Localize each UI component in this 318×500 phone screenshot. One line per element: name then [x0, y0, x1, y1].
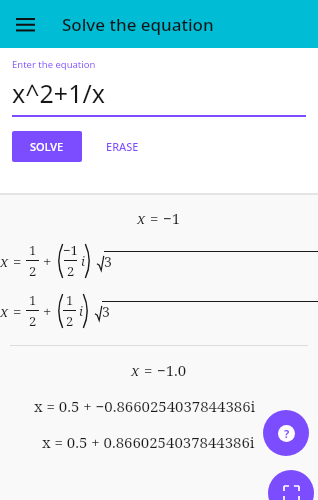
staticText: −1 [63, 241, 78, 259]
staticText: 2 [29, 262, 37, 280]
button[interactable]: Fullscreen [268, 470, 314, 500]
staticText: −1.0 [157, 360, 187, 380]
staticText: i [81, 252, 85, 270]
staticText: 3 [104, 252, 112, 271]
staticText: 2 [66, 312, 74, 330]
button[interactable]: ERASE [98, 132, 147, 161]
staticText: x [0, 301, 9, 321]
staticText: 3 [102, 302, 110, 321]
staticText: = [140, 360, 157, 380]
staticText: 1 [29, 241, 37, 259]
staticText: 2 [67, 262, 75, 280]
staticText: Enter the equation [12, 58, 96, 71]
staticText: x = 0.5 + −0.8660254037844386i [34, 396, 256, 416]
staticText: SOLVE [30, 139, 64, 154]
staticText: −1 [163, 208, 181, 228]
staticText: i [79, 302, 83, 320]
staticText: 1 [29, 291, 37, 309]
button[interactable]: Help [263, 410, 309, 456]
staticText: x = 0.5 + 0.8660254037844386i [42, 432, 255, 452]
staticText: x [137, 208, 146, 228]
staticText: ERASE [106, 139, 139, 154]
staticText: ? [284, 426, 290, 441]
staticText: + [39, 251, 56, 271]
staticText: = [146, 208, 163, 228]
staticText: = [9, 251, 26, 271]
button[interactable]: SOLVE [12, 131, 82, 162]
staticText: 1 [66, 291, 74, 309]
staticText: x [0, 251, 9, 271]
staticText: = [9, 301, 26, 321]
staticText: x^2+1/x [12, 76, 105, 110]
staticText: 2 [29, 312, 37, 330]
staticText: + [39, 301, 56, 321]
button[interactable]: Open navigation menu [8, 7, 42, 41]
staticText: Solve the equation [62, 13, 214, 36]
staticText: x [131, 360, 140, 380]
